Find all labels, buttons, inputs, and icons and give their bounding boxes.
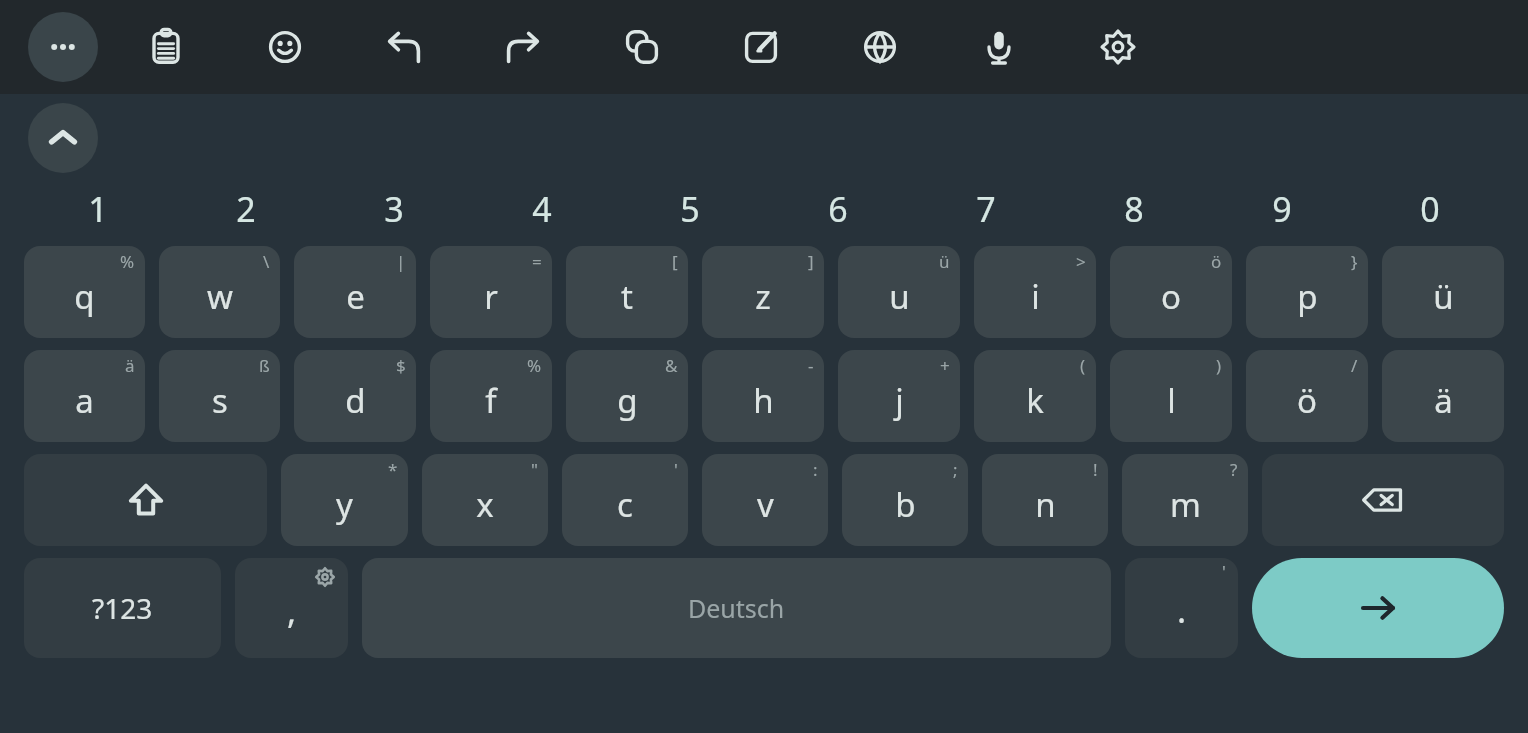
button[interactable]: ?123: [24, 558, 221, 658]
button[interactable]: &: [566, 350, 688, 442]
staticText: ?: [1230, 458, 1238, 481]
button[interactable]: ;: [842, 454, 968, 546]
staticText: ': [674, 458, 678, 481]
staticText: i: [1031, 274, 1040, 319]
staticText: Deutsch: [688, 591, 785, 625]
staticText: y: [336, 482, 353, 527]
staticText: [: [672, 250, 678, 273]
staticText: z: [755, 274, 771, 319]
staticText: g: [617, 378, 638, 423]
staticText: >: [1076, 250, 1086, 273]
staticText: :: [813, 458, 818, 481]
button[interactable]: (: [974, 350, 1096, 442]
button[interactable]: :: [702, 454, 828, 546]
button[interactable]: +: [838, 350, 960, 442]
button[interactable]: ä: [24, 350, 145, 442]
staticText: s: [212, 378, 228, 423]
staticText: (: [1080, 354, 1086, 377]
button[interactable]: $: [294, 350, 416, 442]
button[interactable]: Hide toolbar: [28, 103, 98, 173]
staticText: .: [1177, 587, 1187, 633]
staticText: m: [1170, 482, 1201, 527]
button[interactable]: \: [159, 246, 280, 338]
staticText: 7: [976, 186, 996, 232]
button[interactable]: Redo: [487, 11, 559, 83]
button[interactable]: }: [1246, 246, 1368, 338]
button[interactable]: Emoji: [249, 11, 321, 83]
button[interactable]: ): [1110, 350, 1232, 442]
button[interactable]: 4: [468, 178, 616, 240]
staticText: -: [808, 354, 814, 377]
staticText: ?123: [92, 589, 153, 627]
staticText: $: [396, 354, 406, 377]
button[interactable]: ': [562, 454, 688, 546]
staticText: ü: [1433, 274, 1454, 319]
button[interactable]: ß: [159, 350, 280, 442]
staticText: ): [1216, 354, 1222, 377]
button[interactable]: *: [281, 454, 408, 546]
staticText: 3: [384, 186, 404, 232]
button[interactable]: ü: [838, 246, 960, 338]
button[interactable]: Backspace: [1262, 454, 1504, 546]
staticText: 5: [680, 186, 700, 232]
button[interactable]: %: [430, 350, 552, 442]
button[interactable]: Clipboard: [130, 11, 202, 83]
button[interactable]: Comma, settings: [235, 558, 348, 658]
button[interactable]: |: [294, 246, 416, 338]
staticText: !: [1093, 458, 1098, 481]
button[interactable]: =: [430, 246, 552, 338]
staticText: k: [1026, 378, 1044, 423]
button[interactable]: [: [566, 246, 688, 338]
button[interactable]: !: [982, 454, 1108, 546]
staticText: t: [621, 274, 633, 319]
staticText: ,: [287, 588, 297, 634]
staticText: ä: [125, 354, 135, 377]
staticText: l: [1167, 378, 1176, 423]
button[interactable]: 7: [912, 178, 1060, 240]
button[interactable]: ": [422, 454, 548, 546]
button[interactable]: Language: [844, 11, 916, 83]
staticText: %: [120, 250, 135, 273]
button[interactable]: ': [1125, 558, 1238, 658]
staticText: v: [757, 482, 774, 527]
button[interactable]: 1: [24, 178, 172, 240]
button[interactable]: 5: [616, 178, 764, 240]
staticText: 8: [1124, 186, 1144, 232]
staticText: f: [485, 378, 497, 423]
button[interactable]: 9: [1208, 178, 1356, 240]
button[interactable]: Undo: [368, 11, 440, 83]
button[interactable]: -: [702, 350, 824, 442]
button[interactable]: ü: [1382, 246, 1504, 338]
button[interactable]: ]: [702, 246, 824, 338]
button[interactable]: Voice input: [963, 11, 1035, 83]
staticText: h: [753, 378, 774, 423]
staticText: *: [388, 458, 398, 481]
staticText: b: [895, 482, 916, 527]
button[interactable]: More options: [28, 12, 98, 82]
button[interactable]: Copy: [606, 11, 678, 83]
staticText: ': [1222, 560, 1226, 583]
button[interactable]: 6: [764, 178, 912, 240]
button[interactable]: >: [974, 246, 1096, 338]
staticText: 6: [828, 186, 848, 232]
button[interactable]: ä: [1382, 350, 1504, 442]
button[interactable]: 2: [172, 178, 320, 240]
button[interactable]: %: [24, 246, 145, 338]
staticText: q: [74, 274, 95, 319]
button[interactable]: ö: [1110, 246, 1232, 338]
staticText: ö: [1297, 378, 1317, 423]
staticText: ß: [259, 354, 270, 377]
button[interactable]: 8: [1060, 178, 1208, 240]
button[interactable]: Edit: [725, 11, 797, 83]
button[interactable]: ?: [1122, 454, 1248, 546]
button[interactable]: Shift: [24, 454, 267, 546]
button[interactable]: 3: [320, 178, 468, 240]
staticText: r: [484, 274, 498, 319]
button[interactable]: Deutsch: [362, 558, 1111, 658]
button[interactable]: 0: [1356, 178, 1504, 240]
staticText: |: [396, 250, 406, 273]
staticText: \: [263, 250, 270, 273]
button[interactable]: Enter: [1252, 558, 1504, 658]
button[interactable]: /: [1246, 350, 1368, 442]
button[interactable]: Settings: [1082, 11, 1154, 83]
